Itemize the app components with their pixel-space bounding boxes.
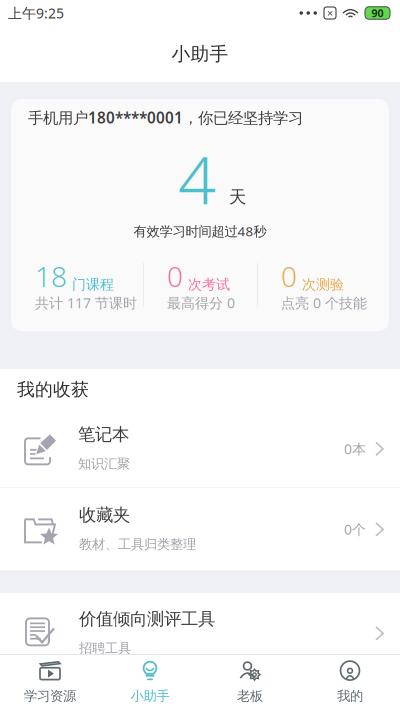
button[interactable]: 老板 (200, 654, 300, 711)
staticText: 招聘工具 (79, 640, 131, 657)
staticText: 次测验 (302, 276, 344, 293)
staticText: 0本 (344, 439, 366, 458)
staticText: 天 (229, 186, 246, 208)
staticText: 教材、工具归类整理 (79, 536, 196, 553)
staticText: 次考试 (188, 276, 230, 293)
staticText: 知识汇聚 (78, 455, 130, 472)
staticText: 共计 117 节课时 (35, 293, 137, 312)
button[interactable]: 小助手 (100, 654, 200, 711)
staticText: 有效学习时间超过48秒 (133, 222, 266, 240)
staticText: 我的 (337, 688, 363, 704)
button[interactable]: 价值倾向测评工具 (0, 593, 400, 673)
button[interactable]: 我的 (300, 654, 400, 711)
staticText: 价值倾向测评工具 (79, 608, 215, 630)
button[interactable]: 收藏夹 (0, 488, 400, 570)
staticText: 小助手 (171, 42, 228, 66)
staticText: 0 (167, 257, 183, 295)
staticText: 90 (371, 6, 383, 20)
staticText: × (327, 6, 333, 20)
staticText: 0个 (344, 520, 366, 539)
staticText: 上午9:25 (8, 3, 64, 23)
staticText: 小助手 (130, 688, 169, 704)
staticText: 我的收获 (17, 378, 89, 401)
staticText: 老板 (237, 688, 263, 704)
staticText: 笔记本 (78, 423, 129, 445)
button[interactable]: 笔记本 (0, 410, 400, 487)
button[interactable]: 学习资源 (0, 654, 100, 711)
staticText: 点亮 0 个技能 (281, 293, 367, 312)
staticText: 4 (178, 133, 216, 224)
staticText: 学习资源 (24, 688, 76, 704)
staticText: 收藏夹 (79, 504, 130, 526)
staticText: 18 (35, 257, 67, 295)
staticText: 最高得分 0 (167, 293, 235, 312)
staticText: 手机用户180****0001，你已经坚持学习 (28, 107, 303, 128)
staticText: 0 (281, 257, 297, 295)
staticText: 门课程 (72, 276, 114, 293)
